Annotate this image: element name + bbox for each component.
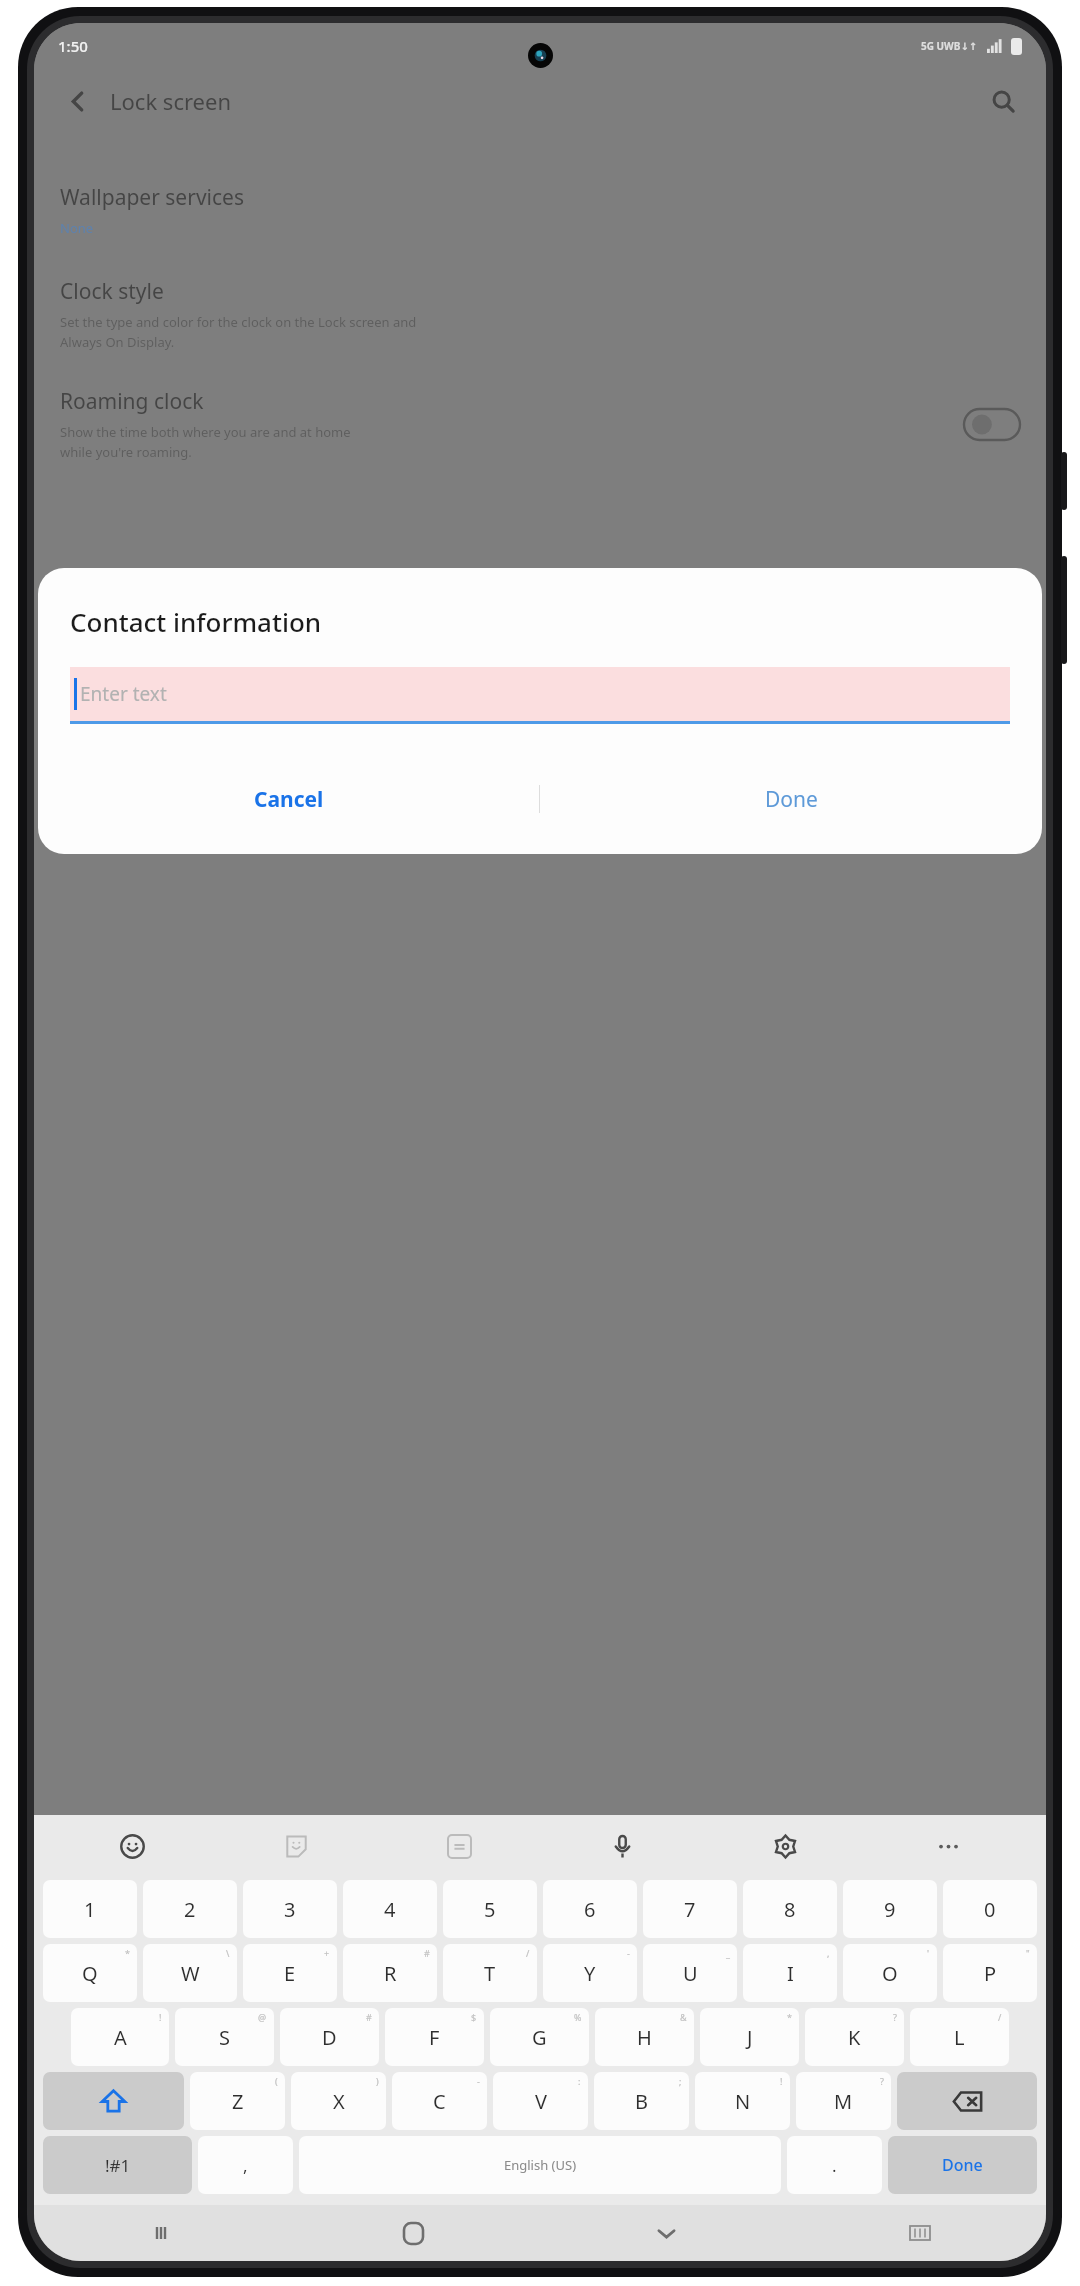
staticText: Y xyxy=(584,1960,596,1987)
staticText: , xyxy=(827,1947,830,1959)
button[interactable]: !#1 xyxy=(43,2136,192,2194)
button[interactable]: Back xyxy=(54,78,100,124)
staticText: 6 xyxy=(584,1896,596,1923)
staticText: F xyxy=(429,2024,440,2051)
button[interactable]: $ xyxy=(385,2008,484,2066)
staticText: 8 xyxy=(784,1896,796,1923)
staticText: & xyxy=(680,2011,687,2023)
button[interactable]: 0 xyxy=(943,1880,1037,1938)
button[interactable]: 1 xyxy=(43,1880,137,1938)
staticText: Lock screen xyxy=(110,86,232,116)
button[interactable]: , xyxy=(743,1944,837,2002)
button[interactable]: / xyxy=(443,1944,537,2002)
button[interactable]: ! xyxy=(71,2008,169,2066)
button[interactable]: + xyxy=(243,1944,337,2002)
staticText: / xyxy=(526,1947,530,1959)
staticText: 2 xyxy=(184,1896,196,1923)
button[interactable]: " xyxy=(943,1944,1037,2002)
button[interactable]: Stickers xyxy=(214,1815,378,1877)
button[interactable]: : xyxy=(493,2072,588,2130)
staticText: # xyxy=(366,2011,372,2023)
button[interactable]: Recents xyxy=(34,2205,287,2261)
button[interactable]: More options xyxy=(867,1815,1030,1877)
staticText: 5G UWB↓↑ xyxy=(921,39,978,53)
staticText: ( xyxy=(275,2075,278,2087)
staticText: I xyxy=(787,1960,794,1987)
button[interactable]: Roaming clock xyxy=(34,387,1046,461)
button[interactable]: - xyxy=(543,1944,637,2002)
staticText: " xyxy=(1026,1947,1030,1959)
staticText: !#1 xyxy=(105,2154,131,2177)
button[interactable]: Clock style xyxy=(34,277,1046,351)
button[interactable]: Keyboard settings xyxy=(704,1815,867,1877)
button[interactable]: & xyxy=(595,2008,694,2066)
button[interactable]: ( xyxy=(190,2072,285,2130)
button[interactable]: ? xyxy=(796,2072,891,2130)
staticText: # xyxy=(424,1947,430,1959)
staticText: W xyxy=(181,1960,200,1987)
button[interactable]: # xyxy=(343,1944,437,2002)
button[interactable]: \ xyxy=(143,1944,237,2002)
button[interactable]: , xyxy=(198,2136,293,2194)
button[interactable]: Search xyxy=(980,78,1026,124)
button[interactable]: ? xyxy=(805,2008,904,2066)
staticText: V xyxy=(535,2088,547,2115)
button[interactable]: 5 xyxy=(443,1880,537,1938)
staticText: E xyxy=(284,1960,296,1987)
button[interactable]: Emoji xyxy=(50,1815,214,1877)
staticText: D xyxy=(322,2024,337,2051)
button[interactable]: Enter text xyxy=(70,667,1010,721)
button[interactable]: Done xyxy=(888,2136,1037,2194)
staticText: ' xyxy=(927,1947,930,1959)
button[interactable]: Voice input xyxy=(541,1815,704,1877)
button[interactable]: _ xyxy=(643,1944,737,2002)
staticText: * xyxy=(787,2011,792,2023)
staticText: None xyxy=(60,219,94,237)
staticText: * xyxy=(125,1947,130,1959)
button[interactable] xyxy=(964,409,1020,440)
staticText: Enter text xyxy=(80,681,167,707)
staticText: , xyxy=(243,2154,248,2177)
button[interactable]: Cancel xyxy=(38,760,539,838)
button[interactable]: Hide keyboard xyxy=(540,2205,793,2261)
staticText: C xyxy=(433,2088,446,2115)
button[interactable]: English (US) xyxy=(299,2136,781,2194)
staticText: \ xyxy=(226,1947,230,1959)
button[interactable]: Wallpaper services xyxy=(34,183,1046,237)
staticText: Done xyxy=(765,785,818,814)
button[interactable]: ; xyxy=(594,2072,689,2130)
staticText: P xyxy=(984,1960,997,1987)
button[interactable]: 3 xyxy=(243,1880,337,1938)
button[interactable]: ' xyxy=(843,1944,937,2002)
button[interactable]: * xyxy=(700,2008,799,2066)
button[interactable]: ) xyxy=(291,2072,386,2130)
button[interactable]: 8 xyxy=(743,1880,837,1938)
button[interactable]: ! xyxy=(695,2072,790,2130)
button[interactable]: * xyxy=(43,1944,137,2002)
button[interactable]: 6 xyxy=(543,1880,637,1938)
button[interactable]: 2 xyxy=(143,1880,237,1938)
staticText: - xyxy=(627,1947,630,1959)
button[interactable]: Done xyxy=(540,760,1042,838)
button[interactable]: - xyxy=(392,2072,487,2130)
button[interactable]: . xyxy=(787,2136,882,2194)
button[interactable]: @ xyxy=(175,2008,274,2066)
button[interactable]: Backspace xyxy=(897,2072,1037,2130)
button[interactable]: % xyxy=(490,2008,589,2066)
staticText: Z xyxy=(232,2088,244,2115)
staticText: Show the time both where you are and at … xyxy=(60,423,351,461)
staticText: J xyxy=(747,2024,753,2051)
staticText: Q xyxy=(82,1960,98,1987)
button[interactable]: Shift xyxy=(43,2072,184,2130)
button[interactable]: 9 xyxy=(843,1880,937,1938)
button[interactable]: 4 xyxy=(343,1880,437,1938)
button[interactable]: # xyxy=(280,2008,379,2066)
staticText: H xyxy=(637,2024,652,2051)
button[interactable]: GIF xyxy=(378,1815,541,1877)
button[interactable]: Home xyxy=(287,2205,540,2261)
staticText: O xyxy=(882,1960,898,1987)
button[interactable]: 7 xyxy=(643,1880,737,1938)
staticText: K xyxy=(848,2024,861,2051)
button[interactable]: Keyboard layout xyxy=(793,2205,1046,2261)
button[interactable]: / xyxy=(910,2008,1009,2066)
